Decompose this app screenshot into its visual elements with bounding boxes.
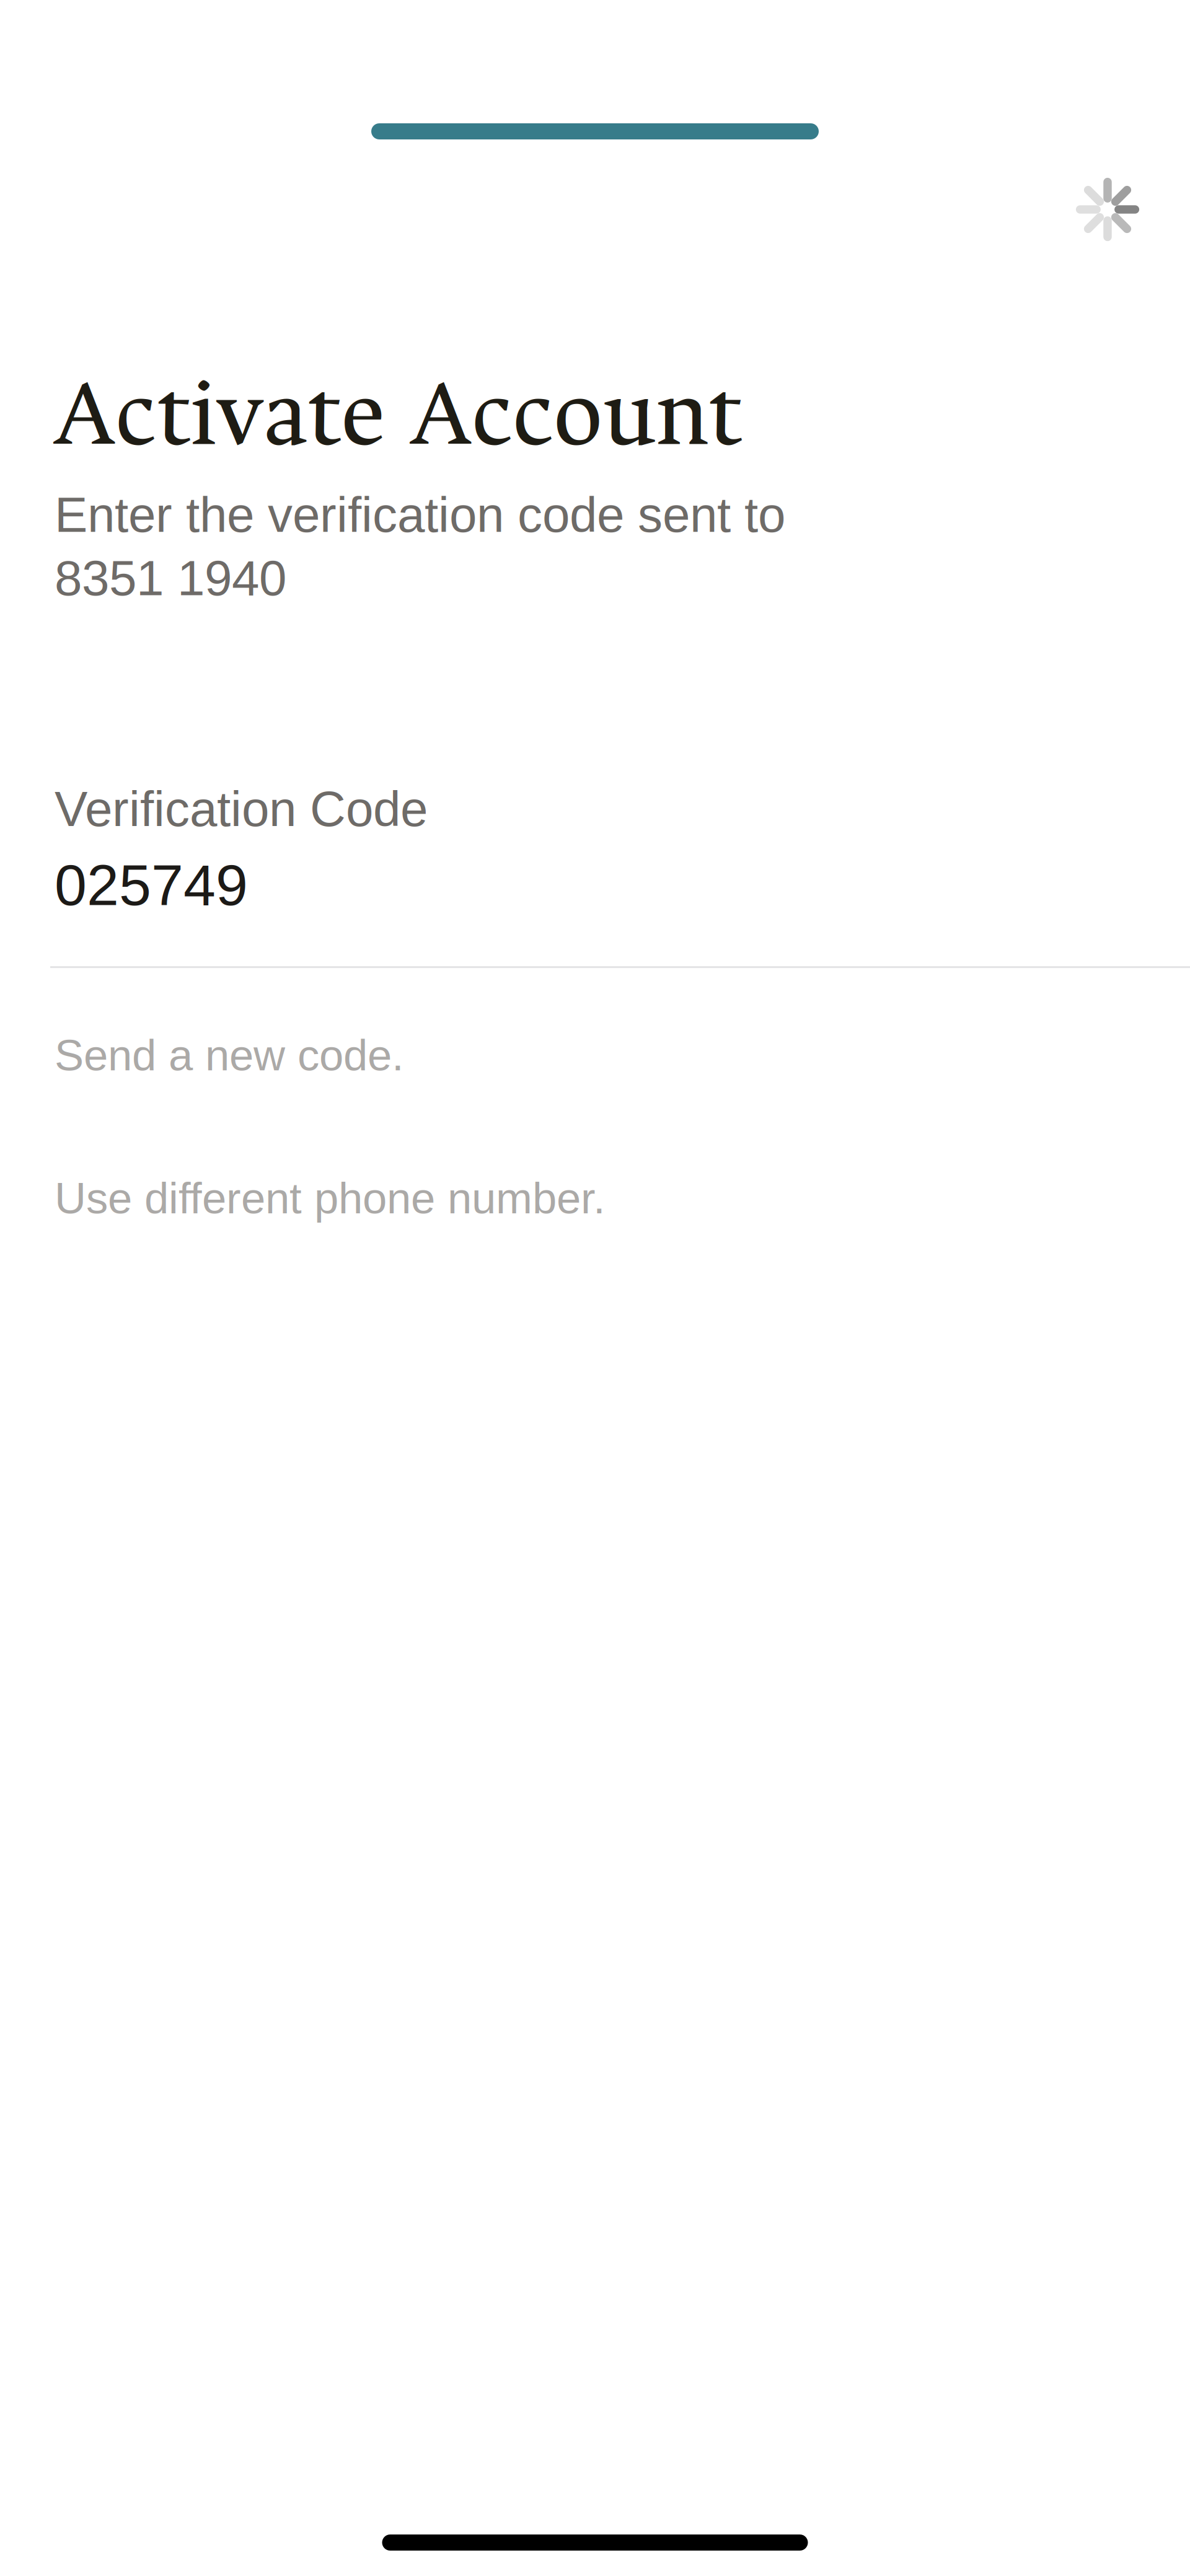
staticText: Enter the verification code sent to xyxy=(55,487,785,542)
button[interactable]: Send a new code. xyxy=(0,968,404,1080)
staticText: 8351 1940 xyxy=(55,550,286,606)
button[interactable]: Use different phone number. xyxy=(0,1080,606,1223)
button[interactable]: Loading xyxy=(1076,178,1139,241)
staticText: 025749 xyxy=(55,853,248,917)
staticText: Verification Code xyxy=(55,781,428,837)
staticText: Send a new code. xyxy=(55,1031,404,1080)
staticText: Use different phone number. xyxy=(55,1174,606,1223)
staticText: Activate Account xyxy=(53,356,742,473)
